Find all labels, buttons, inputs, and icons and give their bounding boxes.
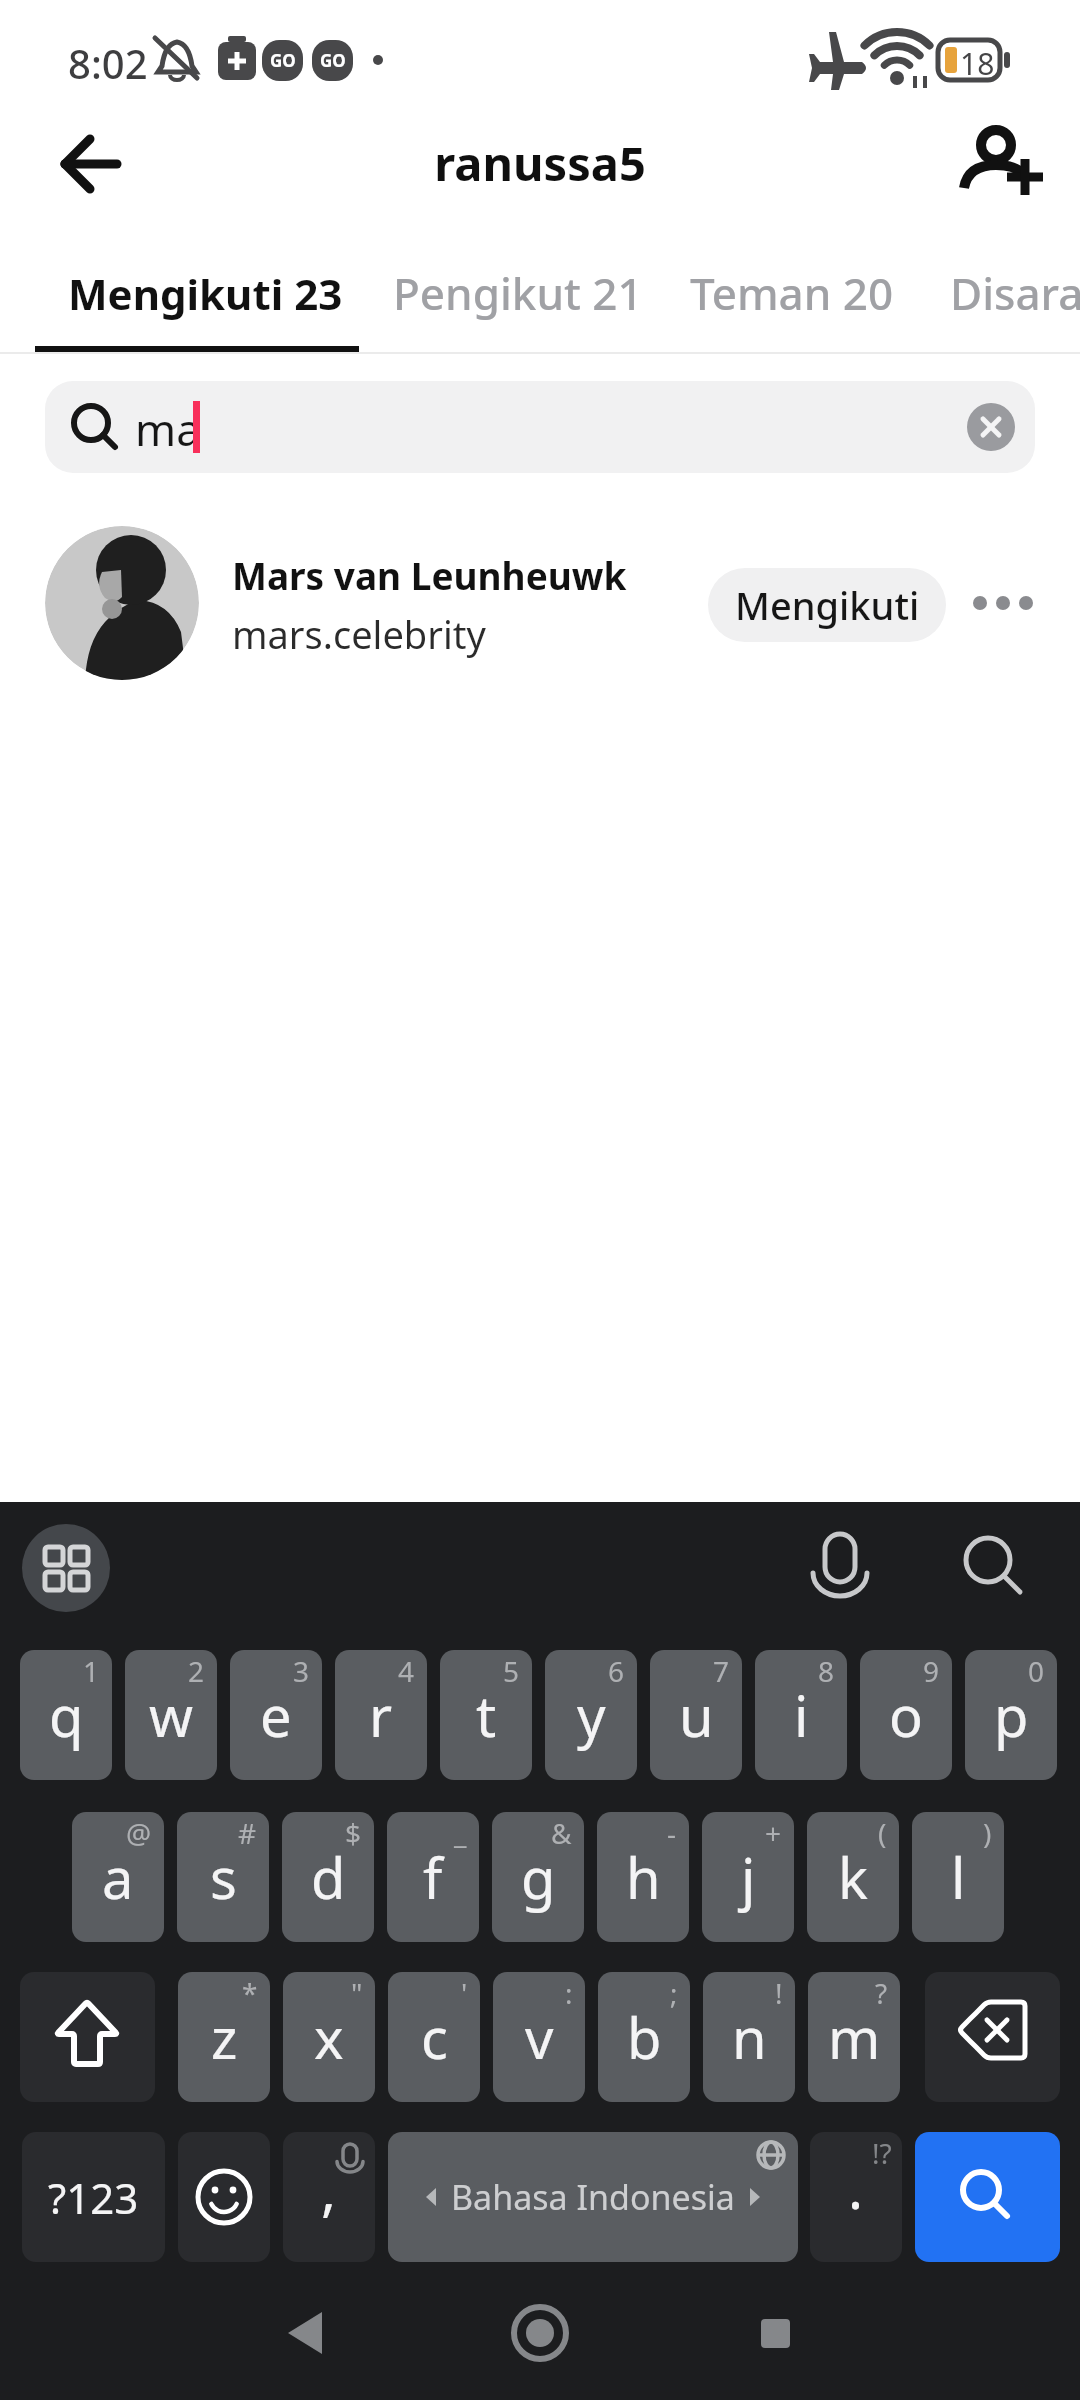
staticText: 4: [398, 1652, 415, 1690]
button[interactable]: o: [860, 1650, 952, 1780]
button[interactable]: [967, 403, 1015, 451]
button[interactable]: [495, 2300, 585, 2390]
staticText: 8:02: [68, 36, 148, 90]
button[interactable]: y: [545, 1650, 637, 1780]
staticText: Mengikuti: [735, 579, 920, 631]
staticText: 6: [608, 1652, 625, 1690]
staticText: v: [525, 1999, 554, 2075]
button[interactable]: t: [440, 1650, 532, 1780]
staticText: 0: [1028, 1652, 1045, 1690]
button[interactable]: [915, 2132, 1060, 2262]
button[interactable]: u: [650, 1650, 742, 1780]
staticText: m: [828, 1999, 881, 2075]
staticText: ): [983, 1814, 992, 1852]
staticText: ;: [670, 1974, 678, 2012]
staticText: :: [565, 1974, 573, 2012]
button[interactable]: b: [598, 1972, 690, 2102]
staticText: ?: [875, 1974, 888, 2012]
staticText: ?123: [48, 2169, 139, 2226]
button[interactable]: c: [388, 1972, 480, 2102]
button[interactable]: [260, 2300, 350, 2390]
button[interactable]: j: [702, 1812, 794, 1942]
button[interactable]: [730, 2300, 820, 2390]
staticText: k: [838, 1839, 868, 1915]
button[interactable]: Pengikut 21: [393, 250, 643, 346]
staticText: a: [102, 1839, 134, 1915]
staticText: ,: [321, 2151, 337, 2227]
staticText: Disaran: [950, 263, 1080, 323]
staticText: 8: [818, 1652, 835, 1690]
staticText: j: [741, 1839, 756, 1915]
button[interactable]: n: [703, 1972, 795, 2102]
staticText: ma: [135, 399, 201, 459]
button[interactable]: w: [125, 1650, 217, 1780]
staticText: *: [242, 1974, 258, 2012]
button[interactable]: r: [335, 1650, 427, 1780]
button[interactable]: x: [283, 1972, 375, 2102]
staticText: u: [679, 1677, 714, 1753]
button[interactable]: v: [493, 1972, 585, 2102]
staticText: @: [126, 1814, 152, 1852]
button[interactable]: e: [230, 1650, 322, 1780]
button[interactable]: [20, 1972, 155, 2102]
button[interactable]: m: [808, 1972, 900, 2102]
staticText: 3: [293, 1652, 310, 1690]
button[interactable]: ma: [45, 381, 1035, 473]
button[interactable]: Teman 20: [690, 250, 894, 346]
button[interactable]: s: [177, 1812, 269, 1942]
button[interactable]: k: [807, 1812, 899, 1942]
staticText: GO: [270, 49, 296, 72]
staticText: d: [311, 1839, 346, 1915]
button[interactable]: [965, 574, 1055, 634]
button[interactable]: f: [387, 1812, 479, 1942]
button[interactable]: q: [20, 1650, 112, 1780]
staticText: Teman 20: [690, 263, 894, 323]
staticText: l: [951, 1839, 966, 1915]
staticText: w: [149, 1677, 194, 1753]
staticText: &: [551, 1814, 572, 1852]
button[interactable]: a: [72, 1812, 164, 1942]
staticText: 5: [503, 1652, 520, 1690]
button[interactable]: [22, 1524, 110, 1612]
staticText: i: [794, 1677, 809, 1753]
button[interactable]: [40, 125, 140, 205]
button[interactable]: Mengikuti: [708, 568, 946, 642]
staticText: ranussa5: [0, 131, 1080, 195]
staticText: t: [476, 1677, 497, 1753]
staticText: h: [626, 1839, 661, 1915]
staticText: b: [627, 1999, 662, 2075]
button[interactable]: Mars van Leunheuwk: [0, 514, 1080, 692]
button[interactable]: .: [810, 2132, 902, 2262]
button[interactable]: Bahasa Indonesia: [388, 2132, 798, 2262]
button[interactable]: d: [282, 1812, 374, 1942]
button[interactable]: [925, 1972, 1060, 2102]
staticText: r: [369, 1677, 393, 1753]
button[interactable]: h: [597, 1812, 689, 1942]
button[interactable]: g: [492, 1812, 584, 1942]
staticText: $: [345, 1814, 362, 1852]
button[interactable]: ,: [283, 2132, 375, 2262]
staticText: !?: [872, 2134, 892, 2172]
button[interactable]: p: [965, 1650, 1057, 1780]
button[interactable]: Disaran: [950, 250, 1080, 346]
staticText: c: [421, 1999, 448, 2075]
button[interactable]: l: [912, 1812, 1004, 1942]
button[interactable]: [795, 1522, 885, 1612]
staticText: q: [49, 1677, 84, 1753]
staticText: 7: [713, 1652, 730, 1690]
staticText: y: [577, 1677, 606, 1753]
button[interactable]: z: [178, 1972, 270, 2102]
staticText: Mengikuti 23: [68, 265, 343, 322]
button[interactable]: [948, 1522, 1038, 1612]
button[interactable]: [178, 2132, 270, 2262]
staticText: mars.celebrity: [232, 608, 486, 660]
button[interactable]: i: [755, 1650, 847, 1780]
staticText: p: [994, 1677, 1029, 1753]
staticText: f: [423, 1839, 443, 1915]
staticText: !: [775, 1974, 783, 2012]
button[interactable]: [955, 115, 1055, 215]
staticText: o: [889, 1677, 923, 1753]
button[interactable]: ?123: [22, 2132, 165, 2262]
staticText: 18: [960, 43, 995, 84]
button[interactable]: Mengikuti 23: [35, 250, 310, 346]
